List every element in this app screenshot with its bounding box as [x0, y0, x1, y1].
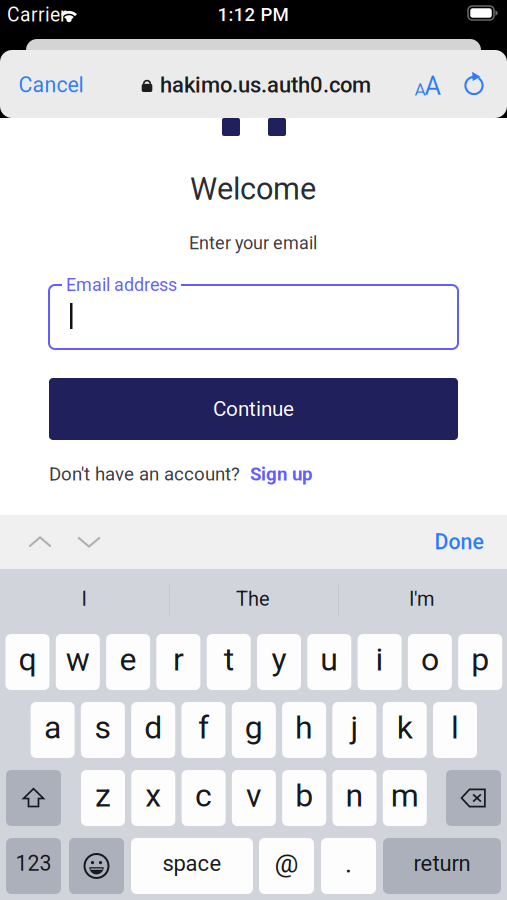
staticText: n — [345, 777, 363, 814]
button[interactable]: q — [5, 634, 49, 690]
staticText: f — [198, 709, 209, 746]
button[interactable]: d — [131, 702, 175, 758]
button[interactable]: j — [332, 702, 376, 758]
button[interactable]: Done — [422, 520, 496, 564]
button[interactable]: Reload — [452, 65, 496, 105]
staticText: 1:12 PM — [217, 4, 288, 25]
button[interactable]: n — [332, 770, 376, 826]
staticText: hakimo.us.auth0.com — [160, 72, 371, 98]
button[interactable]: Delete — [446, 770, 501, 826]
button[interactable]: Next field — [67, 520, 111, 564]
button[interactable]: Emoji — [69, 838, 124, 894]
staticText: v — [246, 777, 262, 814]
staticText: y — [271, 641, 286, 678]
button[interactable]: i — [358, 634, 402, 690]
button[interactable]: v — [232, 770, 276, 826]
staticText: @ — [274, 848, 298, 879]
staticText: I'm — [409, 587, 435, 611]
staticText: Cancel — [18, 72, 83, 97]
staticText: Email address — [66, 274, 177, 295]
staticText: g — [245, 709, 263, 746]
button[interactable]: u — [307, 634, 351, 690]
button[interactable]: Cancel — [9, 63, 93, 107]
staticText: Done — [434, 529, 483, 554]
button[interactable]: c — [182, 770, 226, 826]
staticText: h — [295, 709, 313, 746]
staticText: 123 — [15, 851, 51, 876]
button[interactable]: h — [282, 702, 326, 758]
button[interactable]: return — [383, 838, 501, 894]
button[interactable]: x — [131, 770, 175, 826]
staticText: A — [424, 71, 441, 101]
staticText: r — [173, 641, 184, 678]
staticText: . — [345, 848, 352, 879]
staticText: j — [350, 709, 358, 746]
button[interactable]: l — [433, 702, 477, 758]
staticText: Sign up — [250, 463, 313, 485]
staticText: b — [295, 777, 313, 814]
staticText: p — [471, 641, 489, 678]
button[interactable]: Sign up — [250, 463, 313, 485]
staticText: m — [391, 777, 419, 814]
staticText: o — [421, 641, 439, 678]
button[interactable]: @ — [259, 838, 314, 894]
button[interactable]: s — [81, 702, 125, 758]
button[interactable]: Text size — [404, 66, 448, 106]
staticText: c — [195, 777, 212, 814]
staticText: return — [413, 851, 470, 876]
button[interactable]: Shift — [6, 770, 61, 826]
button[interactable]: e — [106, 634, 150, 690]
staticText: A — [414, 79, 425, 100]
staticText: Continue — [213, 397, 294, 421]
staticText: I — [81, 587, 86, 611]
button[interactable]: space — [131, 838, 253, 894]
button[interactable]: y — [257, 634, 301, 690]
staticText: i — [376, 641, 384, 678]
button[interactable]: g — [232, 702, 276, 758]
button[interactable]: Previous field — [18, 520, 62, 564]
staticText: z — [95, 777, 111, 814]
staticText: a — [44, 709, 61, 746]
button[interactable]: z — [81, 770, 125, 826]
staticText: Don't have an account? — [49, 463, 240, 485]
staticText: k — [397, 709, 413, 746]
button[interactable]: r — [156, 634, 200, 690]
staticText: Welcome — [190, 171, 316, 207]
staticText: t — [224, 641, 234, 678]
button[interactable]: Continue — [49, 378, 458, 440]
button[interactable]: p — [458, 634, 502, 690]
button[interactable]: f — [181, 702, 225, 758]
button[interactable]: . — [321, 838, 376, 894]
button[interactable]: w — [56, 634, 100, 690]
button[interactable]: 123 — [6, 838, 61, 894]
staticText: space — [162, 851, 221, 876]
staticText: Carrier — [7, 4, 67, 26]
staticText: s — [94, 709, 111, 746]
staticText: d — [144, 709, 162, 746]
staticText: x — [145, 777, 161, 814]
button[interactable]: b — [282, 770, 326, 826]
staticText: Enter your email — [189, 232, 317, 254]
staticText: q — [18, 641, 36, 678]
button[interactable]: o — [408, 634, 452, 690]
staticText: l — [451, 709, 459, 746]
staticText: w — [66, 641, 90, 678]
button[interactable]: m — [383, 770, 427, 826]
button[interactable]: a — [31, 702, 75, 758]
staticText: e — [120, 641, 137, 678]
staticText: u — [320, 641, 338, 678]
staticText: The — [236, 587, 270, 611]
button[interactable]: t — [207, 634, 251, 690]
button[interactable]: k — [383, 702, 427, 758]
